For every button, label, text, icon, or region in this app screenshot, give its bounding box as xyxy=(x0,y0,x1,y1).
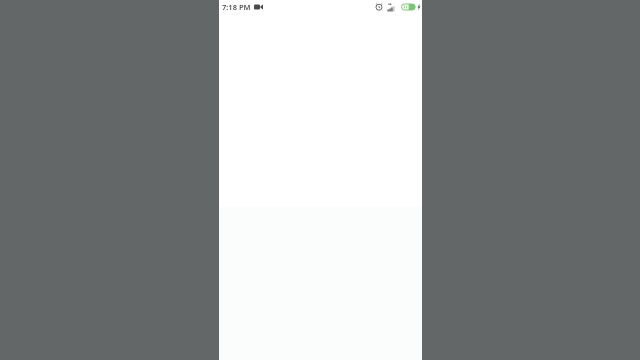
button[interactable] xyxy=(401,3,416,11)
staticText: 7:18 PM xyxy=(222,2,251,12)
